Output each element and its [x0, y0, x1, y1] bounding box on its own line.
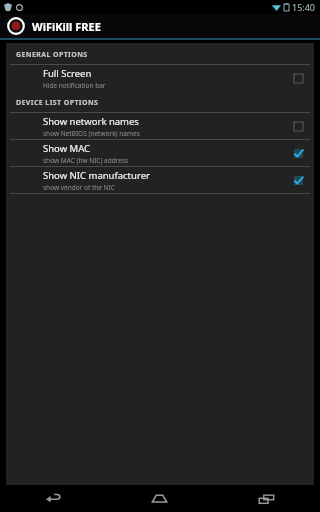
button[interactable]: Back: [0, 485, 106, 512]
staticText: Show NIC manufacturer: [43, 169, 150, 182]
staticText: Show MAC: [43, 142, 91, 155]
staticText: Full Screen: [43, 67, 92, 80]
button[interactable]: Show MAC: [6, 140, 314, 166]
button[interactable]: Disabled: [290, 70, 306, 86]
button[interactable]: Home: [106, 485, 213, 512]
staticText: 15:40: [292, 1, 316, 13]
staticText: show MAC (hw NIC) address: [43, 156, 129, 165]
staticText: show vendor of the NIC: [43, 183, 115, 192]
button[interactable]: Recent apps: [213, 485, 320, 512]
staticText: DEVICE LIST OPTIONS: [16, 98, 99, 108]
button[interactable]: Disabled: [290, 118, 306, 134]
staticText: GENERAL OPTIONS: [16, 50, 88, 60]
button[interactable]: Full Screen: [6, 65, 314, 91]
button[interactable]: Show NIC manufacturer: [6, 167, 314, 193]
button[interactable]: Show network names: [6, 113, 314, 139]
button[interactable]: Enabled: [290, 145, 306, 161]
staticText: Show network names: [43, 115, 139, 128]
button[interactable]: WiFiKill FREE: [0, 14, 320, 38]
staticText: Hide notification bar: [43, 81, 106, 90]
staticText: show NetBIOS (network) names: [43, 129, 140, 138]
staticText: WiFiKill FREE: [32, 19, 101, 34]
button[interactable]: Enabled: [290, 172, 306, 188]
